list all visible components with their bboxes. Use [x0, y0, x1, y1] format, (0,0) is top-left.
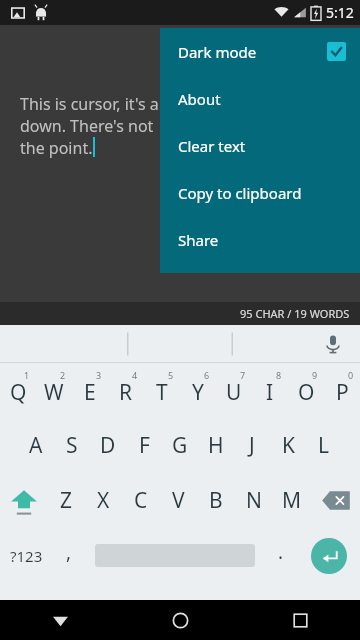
button[interactable]: N	[235, 473, 273, 528]
staticText: ,	[66, 539, 72, 565]
button[interactable]: X	[85, 473, 122, 528]
button[interactable]: ?123	[0, 528, 52, 583]
button[interactable]: Share	[160, 216, 360, 263]
staticText: C	[134, 486, 148, 515]
staticText: the point.	[20, 137, 93, 159]
button[interactable]: 3	[72, 363, 108, 418]
button[interactable]: C	[122, 473, 159, 528]
button[interactable]: Dark mode checkbox	[327, 42, 346, 61]
button[interactable]: 4	[108, 363, 144, 418]
button[interactable]: About	[160, 75, 360, 122]
staticText: 6	[204, 369, 210, 381]
staticText: 95 CHAR / 19 WORDS	[240, 306, 350, 321]
staticText: 1	[24, 369, 30, 381]
staticText: Share	[178, 230, 219, 250]
staticText: down. There's not	[20, 115, 154, 137]
staticText: 2	[60, 369, 66, 381]
staticText: K	[282, 431, 295, 460]
staticText: Copy to clipboard	[178, 183, 302, 203]
staticText: D	[100, 431, 116, 460]
button[interactable]: Dark mode	[160, 28, 360, 75]
staticText: Y	[192, 378, 204, 407]
button[interactable]: Z	[48, 473, 85, 528]
staticText: X	[97, 486, 110, 515]
button[interactable]: Recents	[240, 600, 360, 640]
staticText: 7	[240, 369, 246, 381]
staticText: G	[172, 431, 188, 460]
staticText: S	[66, 431, 78, 460]
staticText: T	[156, 378, 168, 407]
staticText: R	[119, 378, 133, 407]
button[interactable]: 1	[0, 363, 36, 418]
button[interactable]: Voice input	[320, 331, 346, 357]
button[interactable]: 9	[288, 363, 324, 418]
staticText: W	[44, 378, 64, 407]
button[interactable]: 8	[252, 363, 288, 418]
button[interactable]: G	[162, 418, 198, 473]
staticText: 4	[132, 369, 138, 381]
button[interactable]: B	[197, 473, 235, 528]
button[interactable]: Delete	[311, 473, 360, 528]
button[interactable]: ,	[52, 528, 86, 583]
staticText: 5	[168, 369, 174, 381]
button[interactable]: F	[126, 418, 162, 473]
button[interactable]: 5	[144, 363, 180, 418]
staticText: F	[139, 431, 150, 460]
button[interactable]: 7	[216, 363, 252, 418]
staticText: 0	[348, 369, 354, 381]
button[interactable]: 2	[36, 363, 72, 418]
staticText: V	[172, 486, 185, 515]
button[interactable]: D	[90, 418, 126, 473]
staticText: M	[282, 486, 302, 515]
button[interactable]: A	[18, 418, 54, 473]
staticText: N	[246, 486, 262, 515]
button[interactable]: L	[306, 418, 342, 473]
button[interactable]: Clear text	[160, 122, 360, 169]
button[interactable]: K	[270, 418, 306, 473]
button[interactable]: Copy to clipboard	[160, 169, 360, 216]
button[interactable]: S	[54, 418, 90, 473]
staticText: .	[278, 539, 284, 565]
staticText: 5:12	[326, 3, 354, 22]
button[interactable]: Enter	[298, 528, 360, 583]
button[interactable]: V	[159, 473, 197, 528]
staticText: O	[298, 378, 315, 407]
button[interactable]: 6	[180, 363, 216, 418]
button[interactable]: Back	[0, 600, 120, 640]
staticText: A	[29, 431, 43, 460]
button[interactable]: H	[198, 418, 234, 473]
staticText: U	[226, 378, 242, 407]
staticText: ?123	[10, 546, 43, 566]
button[interactable]: Home	[120, 600, 240, 640]
button[interactable]: M	[273, 473, 311, 528]
staticText: Q	[10, 378, 27, 407]
staticText: Clear text	[178, 136, 246, 156]
staticText: This is cursor, it's a	[20, 93, 159, 115]
button[interactable]: Shift	[0, 473, 48, 528]
staticText: Z	[60, 486, 73, 515]
button[interactable]: .	[264, 528, 298, 583]
staticText: About	[178, 89, 221, 109]
staticText: I	[266, 378, 274, 407]
staticText: J	[249, 431, 255, 460]
staticText: E	[84, 378, 96, 407]
staticText: B	[209, 486, 223, 515]
staticText: L	[318, 431, 330, 460]
staticText: 8	[276, 369, 282, 381]
staticText: 3	[96, 369, 102, 381]
staticText: H	[208, 431, 224, 460]
button[interactable]: J	[234, 418, 270, 473]
staticText: 9	[312, 369, 318, 381]
staticText: P	[336, 378, 349, 407]
staticText: Dark mode	[178, 42, 257, 62]
button[interactable]: Space	[86, 528, 264, 583]
button[interactable]: 0	[324, 363, 360, 418]
